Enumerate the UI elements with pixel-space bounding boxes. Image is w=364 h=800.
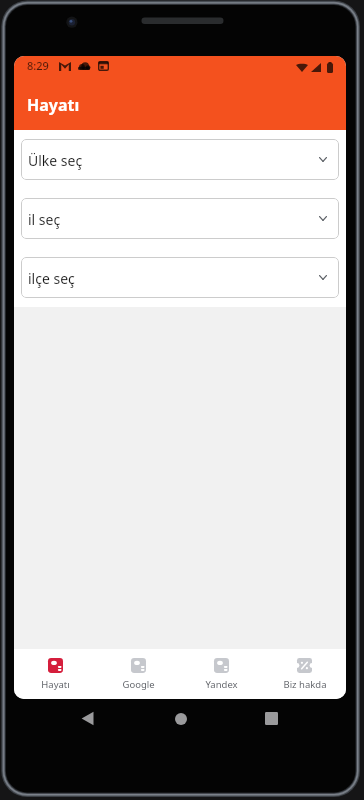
button[interactable]: Back: [71, 702, 104, 735]
button[interactable]: Yandex: [180, 649, 263, 699]
staticText: ilçe seç: [28, 269, 75, 288]
staticText: Hayatı: [27, 94, 80, 116]
button[interactable]: Ülke seç: [21, 139, 339, 180]
staticText: il seç: [28, 210, 61, 229]
button[interactable]: il seç: [21, 198, 339, 239]
staticText: Yandex: [205, 678, 238, 691]
button[interactable]: Hayatı: [14, 649, 97, 699]
staticText: Biz hakda: [283, 678, 327, 691]
staticText: Hayatı: [41, 678, 70, 691]
button[interactable]: Recent apps: [255, 702, 288, 735]
button[interactable]: Biz hakda: [263, 649, 346, 699]
staticText: 8:29: [27, 58, 49, 73]
button[interactable]: ilçe seç: [21, 257, 339, 298]
staticText: Google: [122, 678, 155, 691]
button[interactable]: Home: [164, 702, 197, 735]
button[interactable]: Google: [97, 649, 180, 699]
staticText: Ülke seç: [28, 151, 83, 170]
